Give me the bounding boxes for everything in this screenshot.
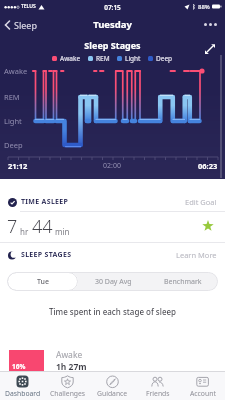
staticText: Friends bbox=[146, 389, 170, 398]
button[interactable]: Sleep bbox=[4, 19, 37, 31]
staticText: Time spent in each stage of sleep bbox=[0, 306, 225, 317]
staticText: 44 bbox=[32, 214, 53, 239]
staticText: 02:00 bbox=[103, 161, 121, 171]
staticText: ᛒ bbox=[192, 4, 196, 10]
button[interactable] bbox=[204, 23, 217, 26]
button[interactable]: Dashboard bbox=[0, 372, 45, 400]
staticText: Awake bbox=[4, 66, 28, 76]
staticText: TIME ASLEEP bbox=[21, 197, 69, 207]
button[interactable]: Account bbox=[180, 372, 225, 400]
staticText: 7 bbox=[7, 214, 18, 239]
staticText: Learn More bbox=[176, 250, 217, 260]
staticText: Account bbox=[190, 389, 216, 398]
staticText: 06:23 bbox=[198, 161, 218, 171]
staticText: 1h 27m bbox=[56, 361, 87, 373]
button[interactable]: Tue bbox=[7, 272, 78, 291]
staticText: Edit Goal bbox=[185, 197, 217, 207]
staticText: TELUS bbox=[21, 3, 36, 10]
staticText: 16% bbox=[12, 362, 26, 371]
button[interactable] bbox=[203, 42, 217, 56]
staticText: SLEEP STAGES bbox=[21, 250, 72, 260]
button[interactable] bbox=[202, 220, 214, 232]
button[interactable]: Guidance bbox=[90, 372, 135, 400]
button[interactable]: Challenges bbox=[45, 372, 90, 400]
staticText: Light bbox=[4, 116, 22, 126]
staticText: Sleep Stages bbox=[0, 39, 225, 51]
staticText: Challenges bbox=[50, 389, 86, 398]
staticText: 88% bbox=[198, 3, 210, 11]
staticText: hr bbox=[20, 226, 29, 237]
staticText: 30 Day Avg bbox=[95, 277, 132, 287]
button[interactable]: Benchmark bbox=[148, 272, 218, 291]
staticText: 21:12 bbox=[8, 161, 28, 171]
button[interactable]: 16% bbox=[9, 350, 44, 372]
staticText: Deep bbox=[4, 140, 23, 150]
staticText: REM bbox=[96, 54, 110, 63]
staticText: 07:15 bbox=[0, 3, 225, 12]
staticText: Guidance bbox=[97, 389, 128, 398]
staticText: Awake bbox=[56, 349, 83, 361]
button[interactable]: Friends bbox=[135, 372, 180, 400]
staticText: Deep bbox=[156, 54, 173, 63]
staticText: Benchmark bbox=[164, 277, 202, 287]
staticText: Tuesday bbox=[0, 18, 225, 31]
button[interactable]: TIME ASLEEP bbox=[8, 196, 217, 208]
staticText: Tue bbox=[37, 277, 49, 287]
staticText: Dashboard bbox=[5, 389, 41, 398]
staticText: Sleep bbox=[14, 19, 37, 31]
staticText: Light bbox=[125, 54, 141, 63]
button[interactable]: 30 Day Avg bbox=[78, 272, 148, 291]
staticText: min bbox=[55, 226, 70, 237]
staticText: Awake bbox=[60, 54, 81, 63]
staticText: REM bbox=[4, 92, 20, 102]
button[interactable]: SLEEP STAGES bbox=[8, 249, 217, 261]
